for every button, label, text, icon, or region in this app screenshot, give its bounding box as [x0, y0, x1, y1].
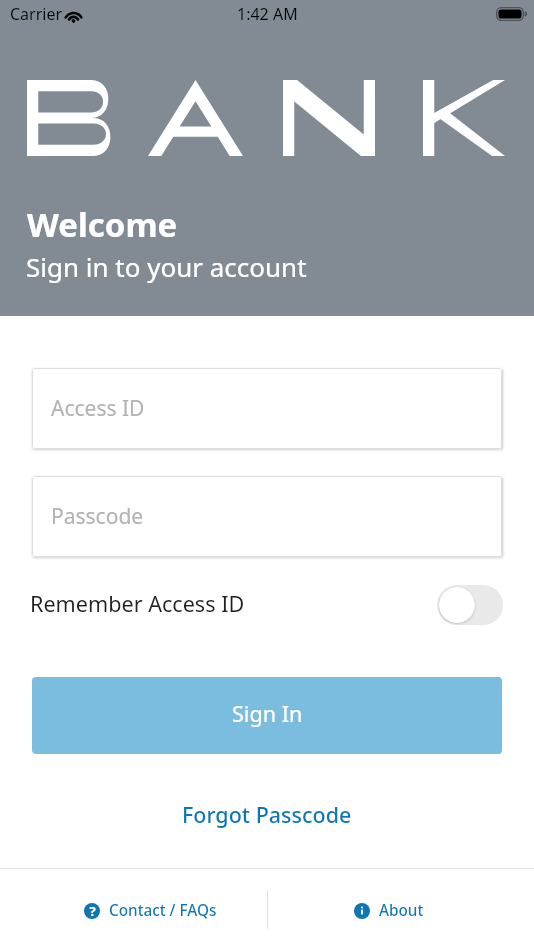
button[interactable]: Remember Access ID [0, 578, 534, 628]
staticText: 1:42 AM [237, 3, 298, 25]
button[interactable]: Forgot Passcode [172, 794, 362, 835]
button[interactable]: Passcode [32, 476, 502, 557]
staticText: Forgot Passcode [182, 800, 352, 829]
staticText: Sign In [232, 699, 303, 728]
staticText: Passcode [51, 502, 144, 531]
button[interactable]: Access ID [32, 368, 502, 449]
staticText: ? [89, 903, 96, 918]
staticText: Remember Access ID [30, 589, 245, 618]
staticText: Carrier [10, 3, 63, 25]
staticText: Sign in to your account [26, 249, 307, 284]
button[interactable]: About [255, 870, 522, 950]
staticText: Access ID [51, 394, 145, 423]
other: Remember Access ID toggle, off [437, 585, 503, 625]
staticText: Contact / FAQs [109, 900, 217, 921]
staticText: Welcome [27, 202, 178, 247]
staticText: About [379, 900, 424, 921]
button[interactable]: Sign In [32, 677, 502, 754]
button[interactable]: ? [17, 870, 284, 950]
